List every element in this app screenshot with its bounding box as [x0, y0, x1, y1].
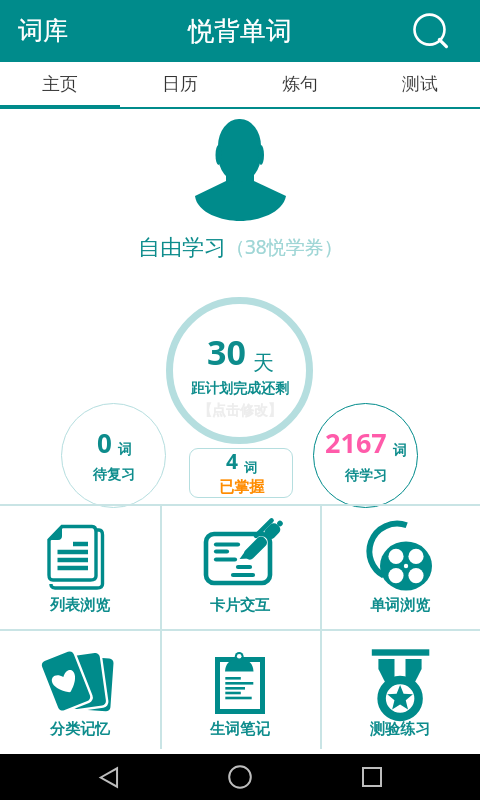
- staticText: 0: [97, 425, 112, 460]
- staticText: 词: [244, 459, 257, 475]
- button[interactable]: 2167: [313, 403, 418, 508]
- staticText: 测验练习: [370, 720, 430, 739]
- staticText: 已掌握: [219, 478, 264, 497]
- staticText: 悦背单词: [188, 15, 292, 48]
- staticText: 单词浏览: [370, 596, 430, 615]
- staticText: 分类记忆: [50, 720, 110, 739]
- button[interactable]: 日历: [120, 62, 240, 109]
- staticText: 天: [253, 350, 274, 376]
- button[interactable]: 列表浏览: [0, 505, 160, 629]
- staticText: 生词笔记: [210, 720, 270, 739]
- button[interactable]: Back: [86, 754, 132, 800]
- button[interactable]: 30: [166, 297, 313, 444]
- staticText: 词库: [18, 15, 68, 46]
- staticText: 炼句: [282, 73, 318, 96]
- staticText: 待复习: [93, 466, 135, 484]
- button[interactable]: 主页: [0, 62, 120, 109]
- button[interactable]: 炼句: [240, 62, 360, 109]
- staticText: 测试: [402, 73, 438, 96]
- button[interactable]: 卡片交互: [160, 505, 320, 629]
- staticText: 4: [226, 447, 239, 476]
- button[interactable]: 测验练习: [320, 630, 480, 749]
- button[interactable]: 4: [189, 448, 293, 498]
- staticText: 距计划完成还剩: [191, 380, 289, 398]
- staticText: 卡片交互: [210, 596, 270, 615]
- staticText: 待学习: [345, 467, 387, 485]
- staticText: 列表浏览: [50, 596, 110, 615]
- button[interactable]: 测试: [360, 62, 480, 109]
- button[interactable]: 生词笔记: [160, 630, 320, 749]
- button[interactable]: 自由学习: [0, 234, 480, 260]
- button[interactable]: Home: [217, 754, 263, 800]
- button[interactable]: Recents: [349, 754, 395, 800]
- staticText: 主页: [42, 73, 78, 96]
- staticText: 词: [393, 442, 407, 460]
- staticText: 2167: [325, 424, 387, 461]
- staticText: 【点击修改】: [198, 402, 282, 420]
- button[interactable]: 单词浏览: [320, 505, 480, 629]
- button[interactable]: 0: [61, 403, 166, 508]
- staticText: 日历: [162, 73, 198, 96]
- button[interactable]: Search: [418, 0, 480, 62]
- staticText: 词: [118, 441, 132, 459]
- staticText: 30: [207, 329, 246, 375]
- staticText: （38悦学券）: [226, 234, 343, 260]
- staticText: 自由学习: [138, 234, 226, 260]
- button[interactable]: 词库: [0, 0, 86, 62]
- button[interactable]: 分类记忆: [0, 630, 160, 749]
